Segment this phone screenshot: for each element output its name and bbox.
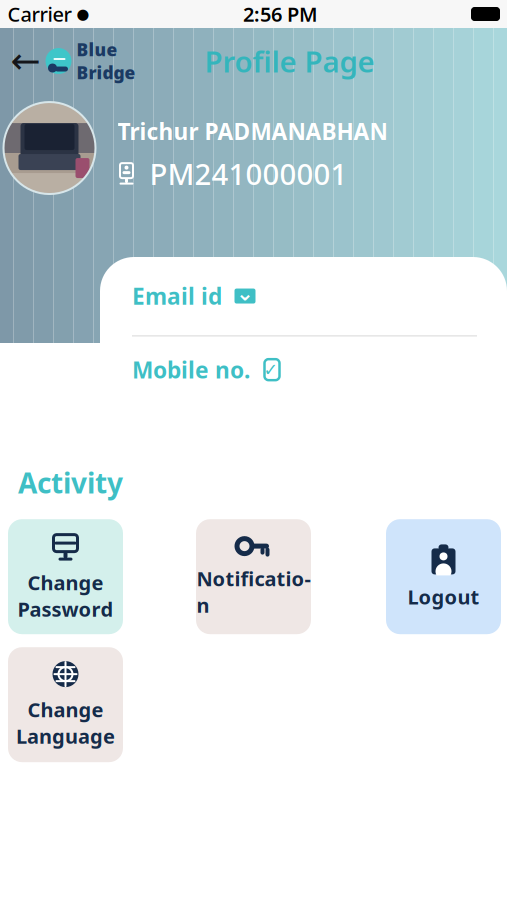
staticText: Change xyxy=(27,569,103,596)
staticText: Trichur PADMANABHAN xyxy=(117,116,387,146)
staticText: Change xyxy=(27,696,103,723)
staticText: ● xyxy=(71,6,89,22)
staticText: ✓ xyxy=(263,360,278,379)
button[interactable]: Change xyxy=(8,519,123,634)
staticText: Activity xyxy=(18,464,123,501)
button[interactable]: Back xyxy=(5,41,45,81)
button[interactable]: Change xyxy=(8,647,123,762)
staticText: Notification xyxy=(196,565,310,618)
staticText: Password xyxy=(17,596,113,622)
staticText: Email id xyxy=(132,281,222,311)
staticText: Mobile no. xyxy=(132,355,250,385)
staticText: ⌄ xyxy=(236,281,254,305)
staticText: Language xyxy=(16,723,115,749)
staticText: Bridge xyxy=(76,61,135,84)
staticText: ← xyxy=(10,41,40,81)
staticText: Carrier xyxy=(7,1,71,27)
staticText: Logout xyxy=(407,583,479,610)
staticText: 2:56 PM xyxy=(243,1,318,27)
button[interactable]: Logout xyxy=(386,519,501,634)
staticText: Profile Page xyxy=(204,41,374,80)
staticText: Blue xyxy=(76,38,117,61)
staticText: PM241000001 xyxy=(149,154,347,193)
button[interactable]: Notification xyxy=(196,519,311,634)
